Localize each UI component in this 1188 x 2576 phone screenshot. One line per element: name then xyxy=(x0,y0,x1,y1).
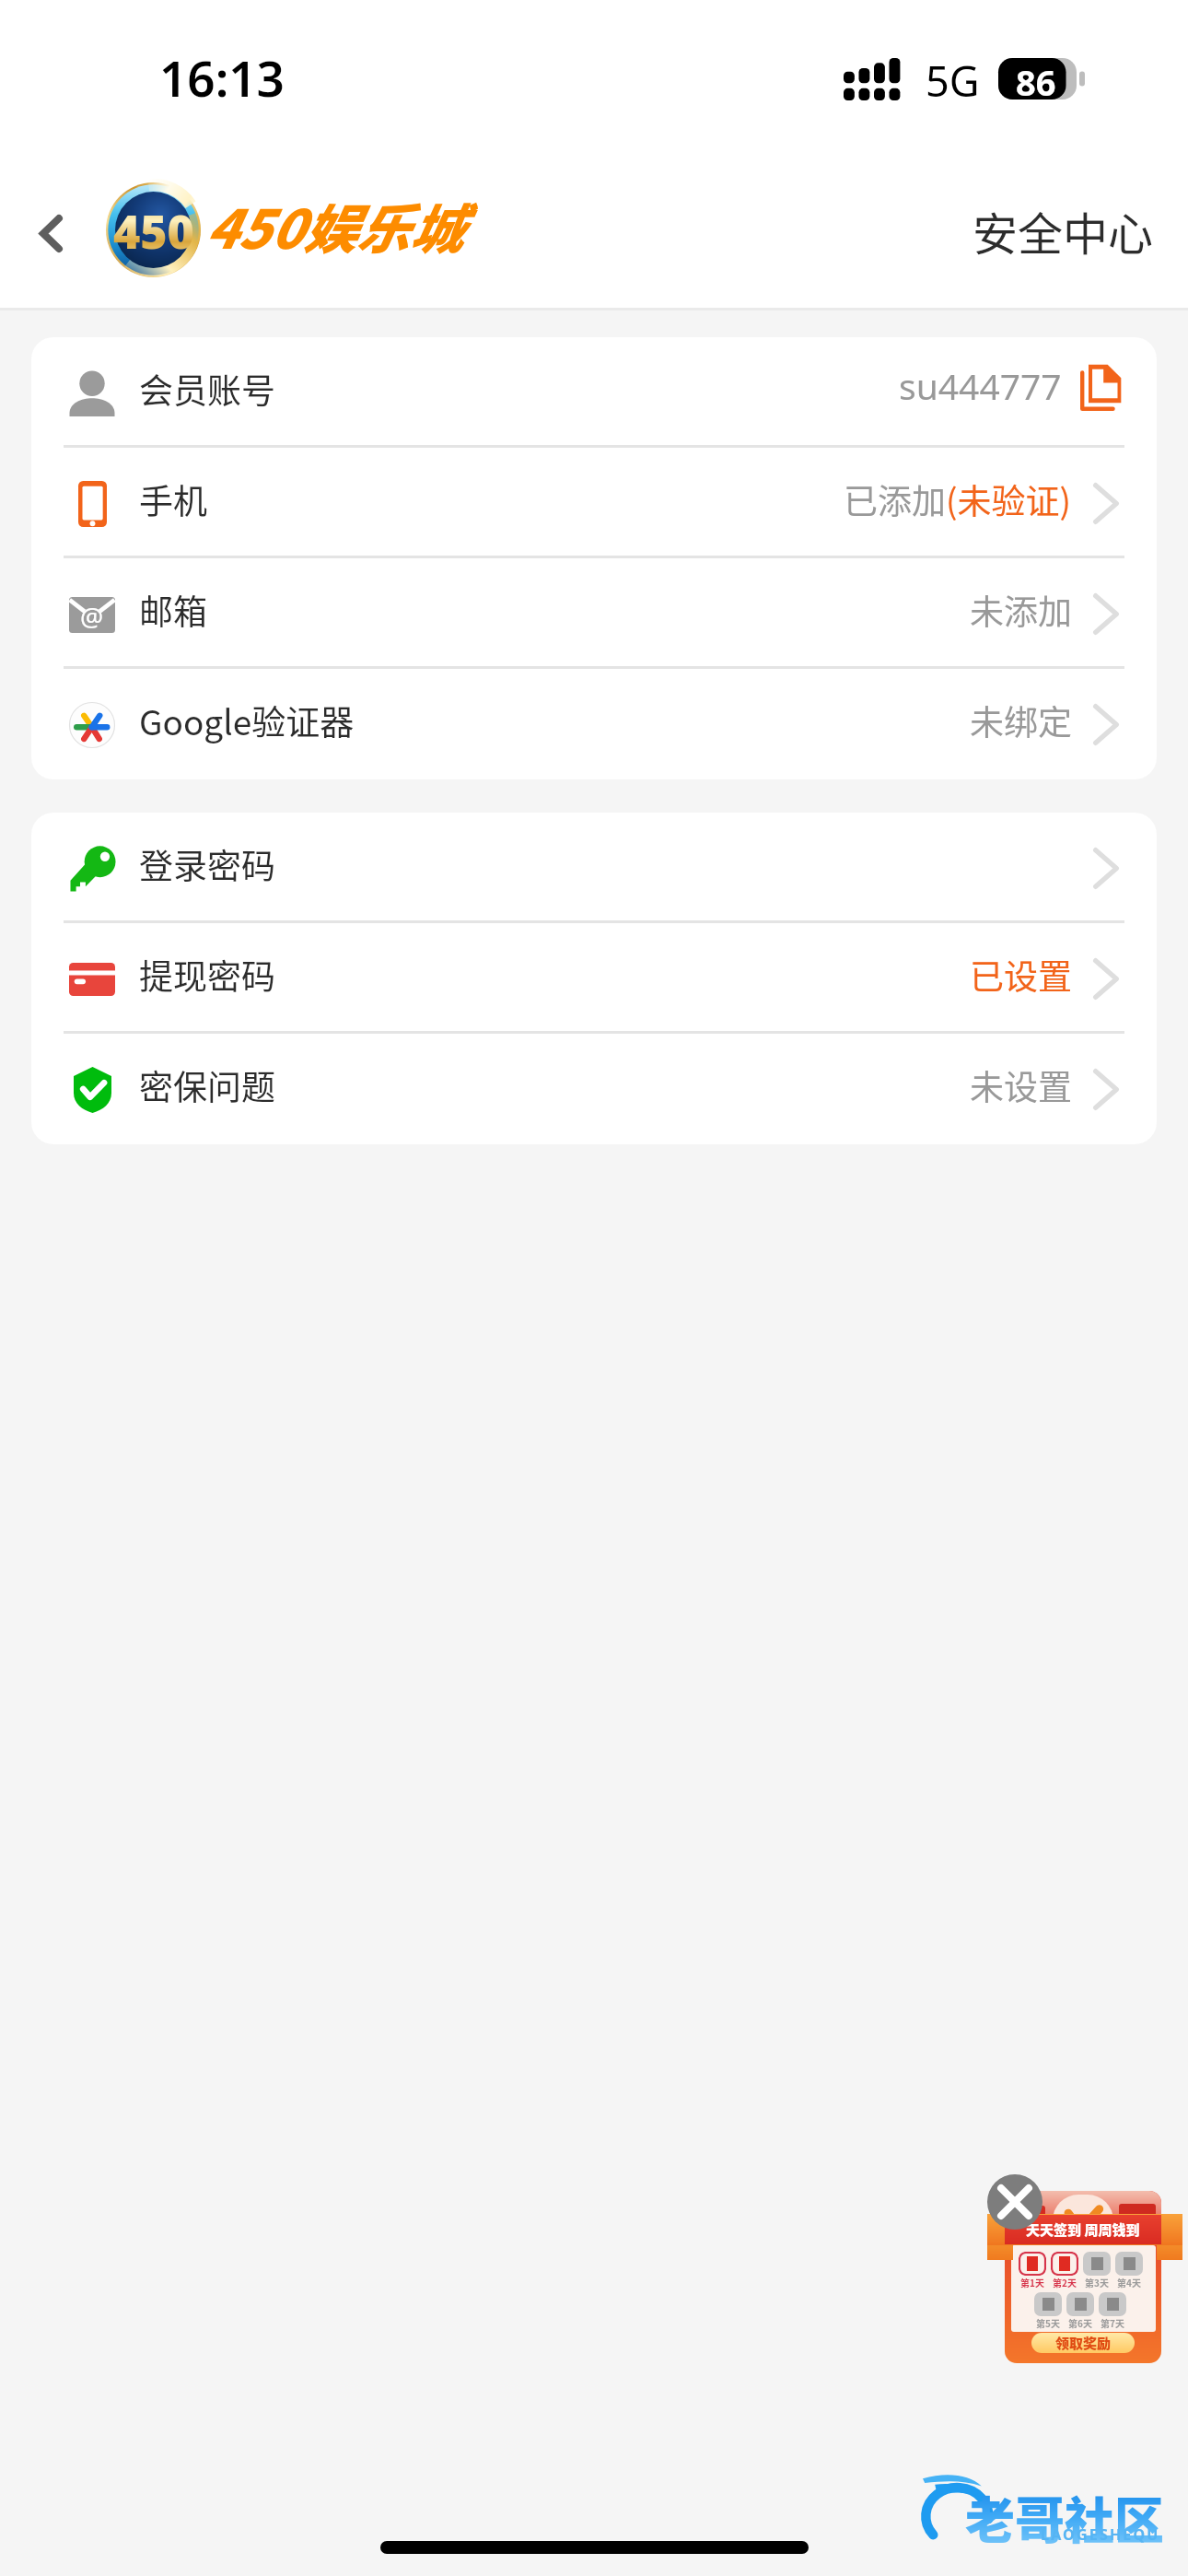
staticText: 未添加 xyxy=(970,585,1072,635)
button[interactable]: Google验证器 xyxy=(31,669,1157,779)
staticText: 16:13 xyxy=(159,44,285,111)
staticText: 老哥社区 xyxy=(965,2481,1164,2553)
staticText: 领取奖励 xyxy=(1055,2333,1112,2353)
staticText: 邮箱 xyxy=(139,585,207,635)
staticText: 安全中心 xyxy=(973,198,1154,263)
staticText: 手机 xyxy=(139,474,207,524)
staticText: (未验证) xyxy=(946,474,1072,524)
staticText: 登录密码 xyxy=(139,839,275,889)
staticText: 天天签到 周周钱到 xyxy=(1026,2219,1140,2240)
staticText: 已设置 xyxy=(970,950,1072,1000)
staticText: 5G xyxy=(926,53,980,109)
staticText: 第6天 xyxy=(1068,2316,1092,2329)
button[interactable]: @ xyxy=(31,558,1157,669)
staticText: 密保问题 xyxy=(139,1060,275,1110)
staticText: 未设置 xyxy=(970,1060,1072,1110)
button[interactable]: Close xyxy=(987,2174,1042,2230)
button[interactable]: Copy account xyxy=(1080,363,1122,411)
button[interactable]: Back xyxy=(16,198,86,268)
staticText: Google验证器 xyxy=(139,696,355,745)
button[interactable]: 手机 xyxy=(31,448,1157,558)
staticText: 第3天 xyxy=(1085,2276,1109,2289)
staticText: 会员账号 xyxy=(139,364,275,414)
button[interactable]: 提现密码 xyxy=(31,923,1157,1034)
staticText: 未绑定 xyxy=(970,696,1072,745)
staticText: 第4天 xyxy=(1117,2276,1141,2289)
staticText: 86 xyxy=(1016,58,1056,106)
staticText: 450 xyxy=(113,200,194,263)
staticText: LAOGESHEQU xyxy=(1041,2524,1160,2545)
button[interactable]: 密保问题 xyxy=(31,1034,1157,1144)
staticText: 第7天 xyxy=(1101,2316,1124,2329)
staticText: 450娱乐城 xyxy=(204,187,462,264)
staticText: 第1天 xyxy=(1020,2276,1044,2289)
button[interactable]: 登录密码 xyxy=(31,813,1157,923)
staticText: @ xyxy=(80,599,104,634)
button[interactable]: 会员账号 xyxy=(31,337,1157,448)
staticText: 已添加 xyxy=(844,474,946,524)
button[interactable]: 第1天 xyxy=(1005,2191,1161,2363)
staticText: 提现密码 xyxy=(139,950,275,1000)
staticText: 第2天 xyxy=(1053,2276,1077,2289)
staticText: 第5天 xyxy=(1036,2316,1060,2329)
staticText: su444777 xyxy=(899,361,1062,410)
